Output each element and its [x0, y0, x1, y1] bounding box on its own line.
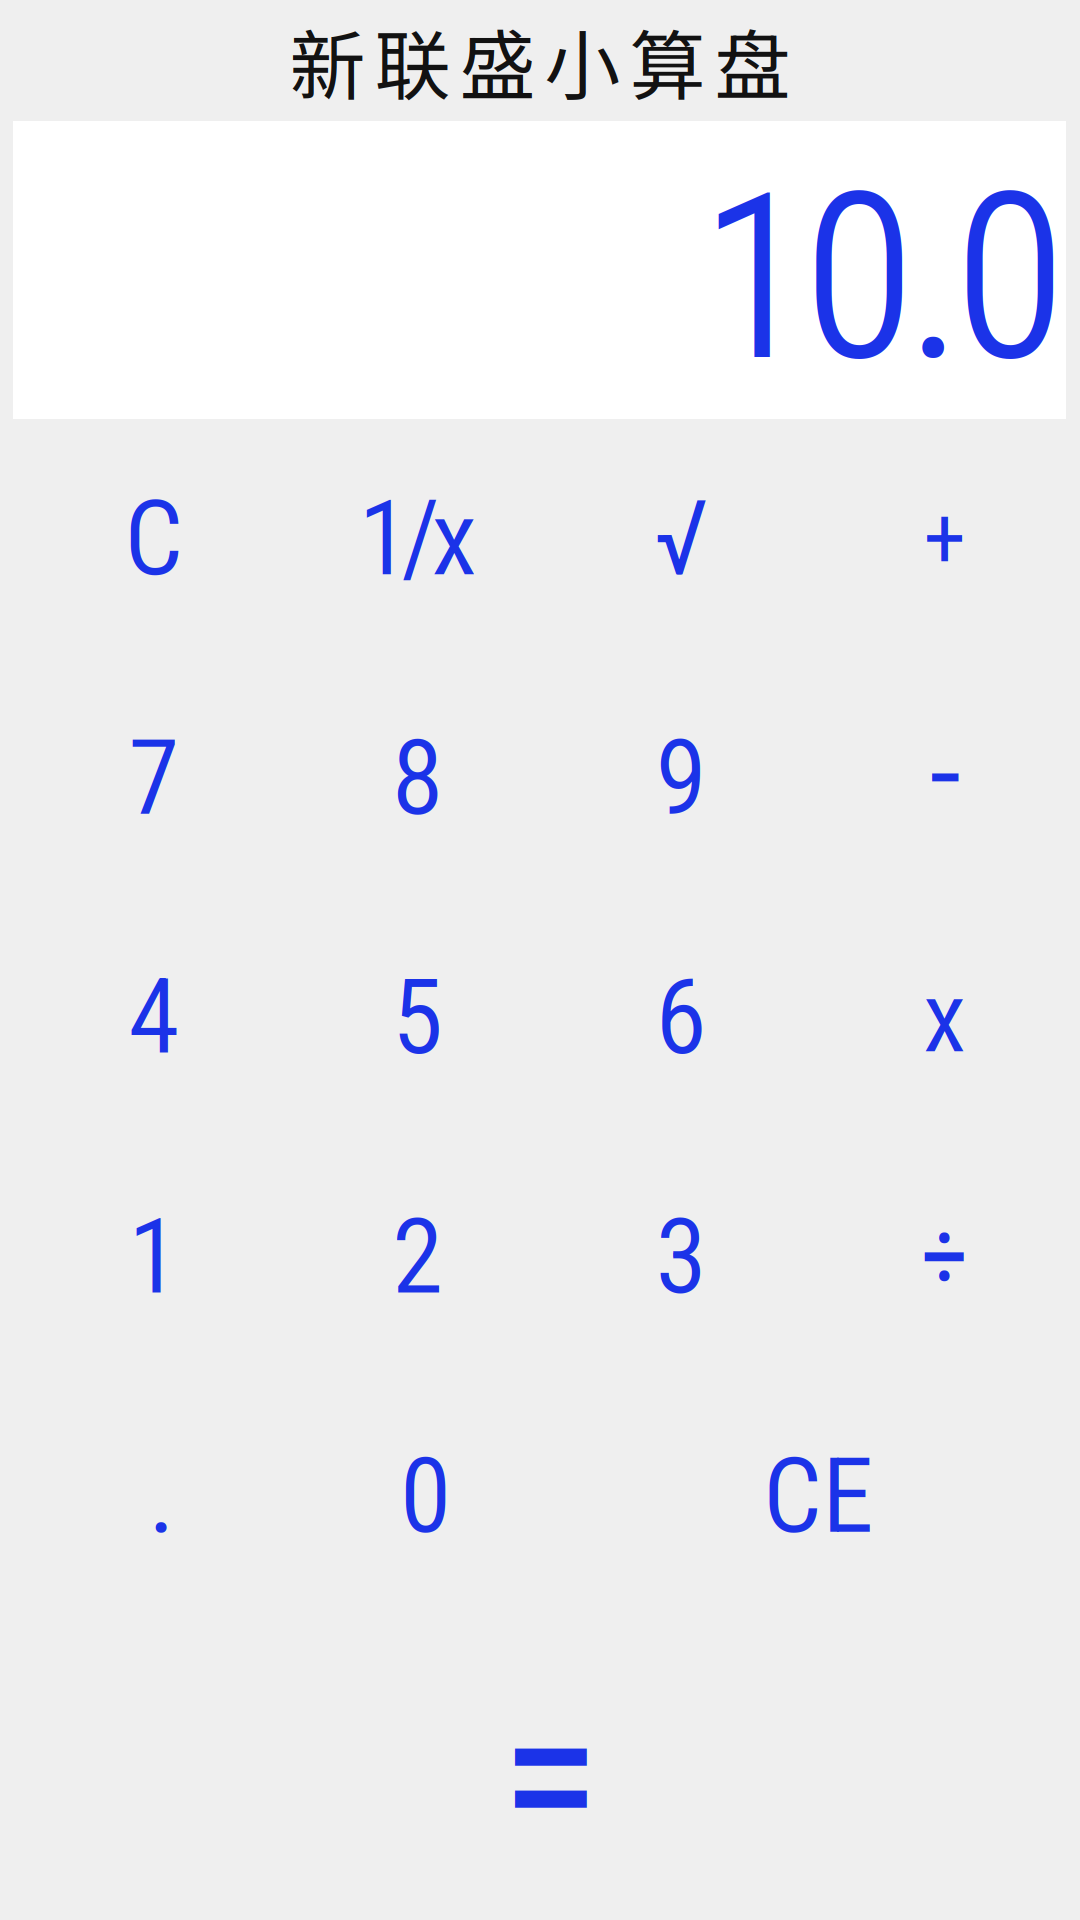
button[interactable]: . — [30, 1377, 294, 1616]
staticText: 新联盛小算盘 — [289, 5, 790, 115]
button[interactable]: 1/x — [286, 419, 549, 658]
staticText: 5 — [392, 957, 443, 1078]
staticText: 6 — [655, 957, 706, 1078]
staticText: CE — [763, 1435, 874, 1557]
button[interactable]: 6 — [549, 898, 813, 1137]
button[interactable]: C — [22, 419, 286, 658]
button[interactable]: 0 — [294, 1377, 557, 1616]
button[interactable]: ÷ — [813, 1137, 1076, 1377]
staticText: 1 — [128, 1196, 179, 1318]
staticText: ÷ — [921, 1201, 968, 1312]
button[interactable]: CE — [557, 1377, 1080, 1616]
button[interactable]: x — [813, 898, 1076, 1137]
staticText: = — [500, 1655, 600, 1899]
staticText: x — [923, 960, 966, 1075]
staticText: . — [148, 1435, 175, 1557]
staticText: 0 — [400, 1435, 451, 1557]
staticText: 7 — [128, 717, 179, 839]
staticText: 9 — [655, 717, 706, 839]
button[interactable]: 1 — [22, 1137, 286, 1377]
staticText: 2 — [392, 1196, 443, 1318]
button[interactable]: 7 — [22, 658, 286, 898]
staticText: 3 — [655, 1196, 706, 1318]
staticText: + — [924, 489, 966, 589]
staticText: C — [124, 478, 183, 600]
staticText: 8 — [392, 717, 443, 839]
button[interactable]: 3 — [549, 1137, 813, 1377]
staticText: 4 — [128, 957, 179, 1078]
button[interactable]: + — [813, 419, 1076, 658]
staticText: − — [927, 734, 963, 822]
button[interactable]: = — [20, 1657, 1080, 1896]
button[interactable]: 4 — [22, 898, 286, 1137]
staticText: 10.0 — [700, 144, 1066, 413]
staticText: √ — [654, 478, 708, 600]
button[interactable]: 2 — [286, 1137, 549, 1377]
staticText: 1/x — [358, 478, 476, 600]
button[interactable]: 5 — [286, 898, 549, 1137]
button[interactable]: − — [813, 658, 1076, 898]
button[interactable]: √ — [549, 419, 813, 658]
button[interactable]: 9 — [549, 658, 813, 898]
button[interactable]: 8 — [286, 658, 549, 898]
